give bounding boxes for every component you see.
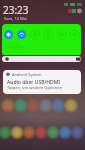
button[interactable]: Android System [3, 70, 81, 94]
staticText: Tippen, um weitere Optionen [7, 85, 62, 90]
staticText: Android System [12, 72, 42, 77]
staticText: Audio über USB/HDMI [7, 79, 61, 86]
staticText: 23:23 [3, 3, 29, 17]
button[interactable]: Brightness [2, 56, 81, 62]
staticText: Sam, 14 Mai [4, 16, 27, 21]
